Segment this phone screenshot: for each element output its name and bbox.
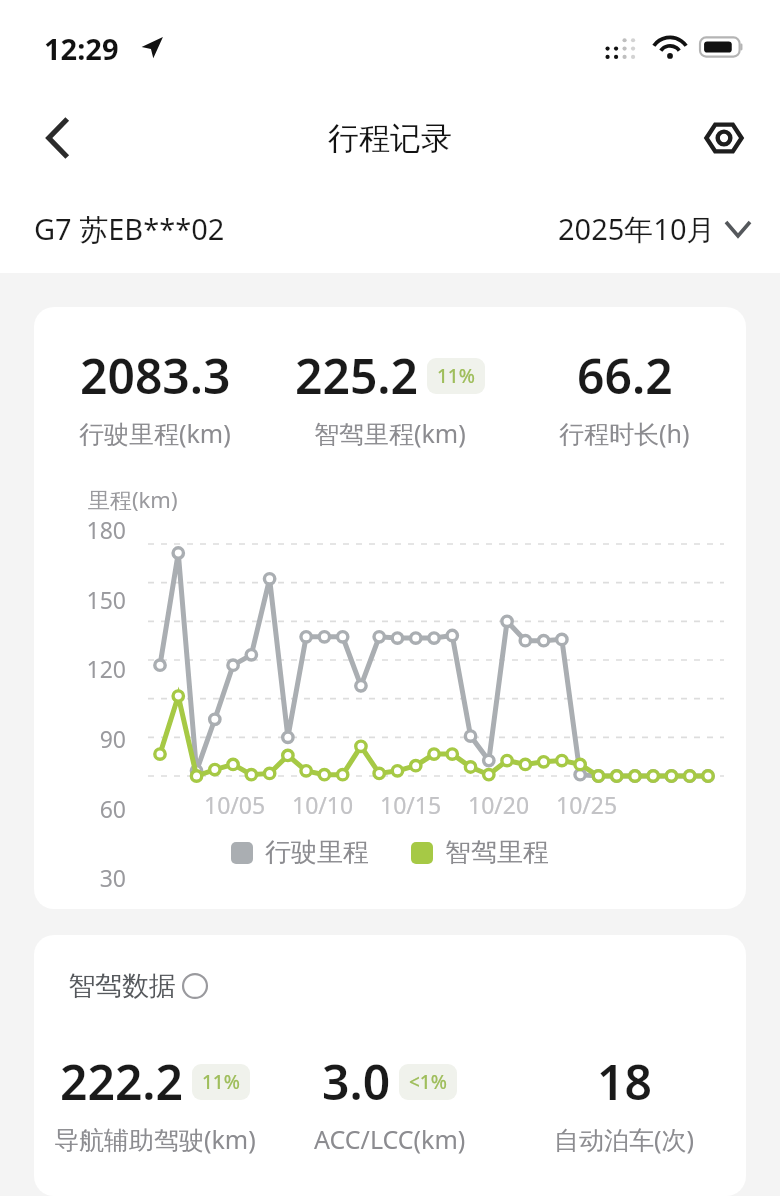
staticText: 10/10 (292, 789, 380, 820)
staticText: 225.2 (295, 343, 419, 408)
staticText: 180 (64, 514, 126, 545)
button[interactable]: Settings (694, 108, 754, 168)
staticText: 行程记录 (328, 119, 452, 158)
staticText: 18 (597, 1049, 652, 1114)
button[interactable]: 2025年10月 (558, 209, 750, 249)
staticText: 2083.3 (80, 343, 231, 408)
staticText: 90 (64, 723, 126, 754)
staticText: 3.0 (322, 1049, 391, 1114)
staticText: ACC/LCC(km) (314, 1122, 466, 1156)
staticText: 行驶里程(km) (79, 416, 231, 450)
staticText: 2025年10月 (558, 209, 716, 249)
staticText: <1% (409, 1069, 447, 1095)
staticText: 行程时长(h) (559, 416, 690, 450)
staticText: 10/05 (204, 789, 292, 820)
staticText: 智驾数据 (68, 969, 176, 1003)
staticText: 120 (64, 653, 126, 684)
staticText: 60 (64, 793, 126, 824)
staticText: 10/20 (468, 789, 556, 820)
staticText: 222.2 (60, 1049, 184, 1114)
staticText: 里程(km) (88, 484, 178, 514)
staticText: 11% (202, 1069, 240, 1095)
staticText: 10/15 (380, 789, 468, 820)
staticText: G7 苏EB***02 (34, 209, 225, 249)
staticText: 150 (64, 584, 126, 615)
staticText: 11% (437, 363, 475, 389)
staticText: 行驶里程 (265, 836, 369, 869)
staticText: 导航辅助驾驶(km) (54, 1122, 256, 1156)
staticText: 自动泊车(次) (554, 1122, 695, 1156)
button[interactable]: 智驾数据 (68, 969, 208, 1003)
other: Info (182, 973, 208, 999)
staticText: 66.2 (577, 343, 673, 408)
staticText: 12:29 (44, 29, 119, 68)
staticText: 10/25 (556, 789, 644, 820)
staticText: 智驾里程(km) (314, 416, 466, 450)
staticText: 智驾里程 (445, 836, 549, 869)
button[interactable]: Back (28, 108, 88, 168)
staticText: 30 (64, 862, 126, 893)
